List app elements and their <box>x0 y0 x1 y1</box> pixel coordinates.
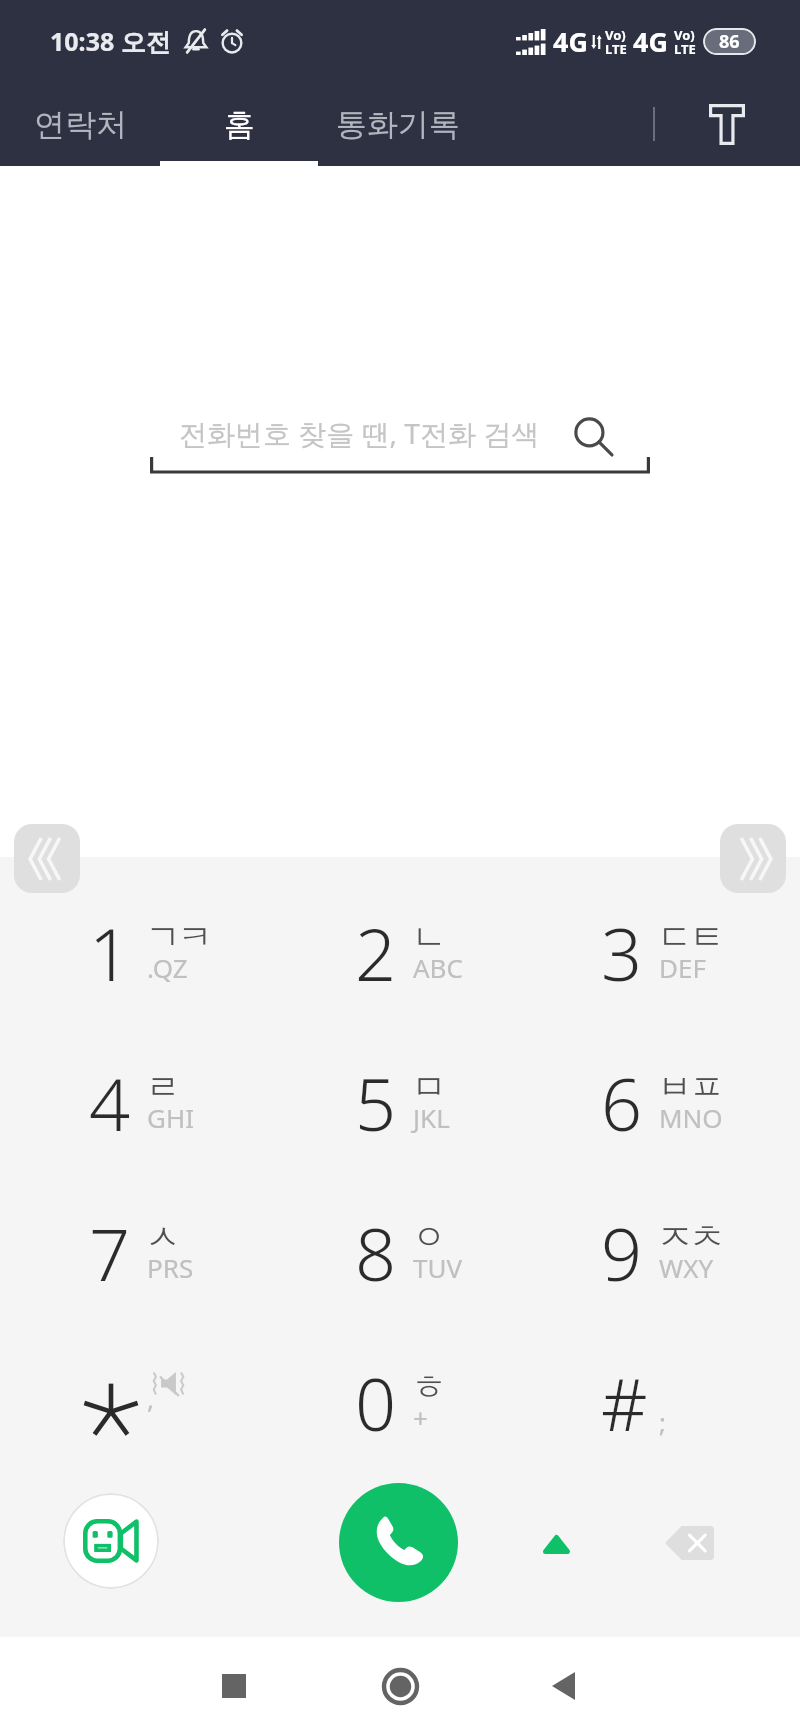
button[interactable]: 5 <box>267 1029 534 1177</box>
staticText: 홈 <box>224 105 255 144</box>
staticText: GHI <box>147 1100 195 1135</box>
button[interactable]: 2 <box>267 879 534 1027</box>
staticText: Vo) <box>674 26 695 44</box>
staticText: 4G <box>633 23 668 60</box>
staticText: 4 <box>89 1054 131 1152</box>
button[interactable]: 6 <box>534 1029 800 1177</box>
staticText: 6 <box>601 1054 643 1152</box>
button[interactable]: , <box>0 1329 267 1477</box>
staticText: 0 <box>355 1354 397 1452</box>
staticText: ㅁ <box>413 1065 445 1109</box>
staticText: 5 <box>355 1054 397 1152</box>
button[interactable]: Call <box>339 1483 458 1602</box>
staticText: JKL <box>413 1100 450 1135</box>
staticText: 3 <box>601 904 643 1002</box>
button[interactable]: 1 <box>0 879 267 1027</box>
button[interactable]: 통화기록 <box>318 84 478 164</box>
staticText: 9 <box>601 1204 643 1302</box>
button[interactable]: 8 <box>267 1179 534 1327</box>
button[interactable]: Previous page <box>14 824 80 893</box>
staticText: LTE <box>674 40 696 58</box>
staticText: ㄴ <box>413 915 445 959</box>
staticText: ㅂㅍ <box>659 1065 723 1109</box>
button[interactable]: 4 <box>0 1029 267 1177</box>
staticText: ㄱㅋ <box>147 915 211 959</box>
button[interactable]: Home <box>355 1641 445 1731</box>
button[interactable]: 홈 <box>160 84 318 164</box>
staticText: ; <box>659 1404 666 1439</box>
staticText: ㄷㅌ <box>659 915 723 959</box>
staticText: PRS <box>147 1250 194 1285</box>
button[interactable]: 연락처 <box>0 84 160 164</box>
staticText: ㅇ <box>413 1215 445 1259</box>
staticText: ㅎ <box>413 1365 445 1409</box>
staticText: LTE <box>605 40 627 58</box>
staticText: 2 <box>355 904 397 1002</box>
staticText: TUV <box>413 1250 463 1285</box>
staticText: Vo) <box>605 26 626 44</box>
button[interactable]: Back <box>518 1641 608 1731</box>
button[interactable]: Show dial options <box>520 1508 592 1580</box>
staticText: , <box>147 1381 154 1416</box>
staticText: ㅅ <box>147 1215 179 1259</box>
button[interactable]: Recents <box>189 1641 279 1731</box>
staticText: 8 <box>355 1204 397 1302</box>
button[interactable]: Video call <box>63 1493 159 1589</box>
staticText: 전화번호 찾을 땐, T전화 검색 <box>179 414 540 452</box>
button[interactable]: 3 <box>534 879 800 1027</box>
button[interactable]: 7 <box>0 1179 267 1327</box>
staticText: 통화기록 <box>336 105 460 144</box>
staticText: 연락처 <box>34 105 127 144</box>
staticText: + <box>413 1400 428 1435</box>
button[interactable]: 전화번호 찾을 땐, T전화 검색 <box>150 402 650 474</box>
staticText: DEF <box>659 950 706 985</box>
staticText: 86 <box>719 29 740 54</box>
button[interactable]: Backspace <box>653 1507 725 1579</box>
button[interactable]: 0 <box>267 1329 534 1477</box>
button[interactable]: # <box>534 1329 800 1477</box>
button[interactable]: 9 <box>534 1179 800 1327</box>
staticText: 10:38 오전 <box>50 24 171 58</box>
staticText: WXY <box>659 1250 714 1285</box>
staticText: ㅈㅊ <box>659 1215 723 1259</box>
staticText: # <box>601 1354 648 1452</box>
staticText: ㄹ <box>147 1065 179 1109</box>
staticText: 1 <box>89 904 131 1002</box>
staticText: .QZ <box>147 950 188 985</box>
staticText: ABC <box>413 950 463 985</box>
button[interactable]: T phone logo <box>691 88 763 160</box>
button[interactable]: Next page <box>720 824 786 893</box>
staticText: 7 <box>89 1204 131 1302</box>
staticText: MNO <box>659 1100 723 1135</box>
staticText: 4G <box>553 23 588 60</box>
